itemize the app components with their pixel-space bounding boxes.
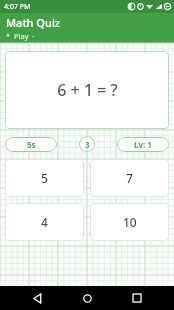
button[interactable]: 6 + 1 = ? (5, 51, 169, 129)
staticText: 5s (27, 139, 36, 150)
button[interactable]: 5s (5, 137, 57, 152)
staticText: 7 (126, 170, 133, 186)
button[interactable]: 5 (5, 159, 84, 197)
button[interactable]: 10 (90, 203, 169, 241)
staticText: Lv: 1 (134, 139, 152, 150)
staticText: - (32, 31, 35, 41)
button[interactable]: 7 (90, 159, 169, 197)
button[interactable]: 4 (5, 203, 84, 241)
staticText: 4:07 PM (4, 2, 31, 12)
staticText: 5 (41, 170, 48, 186)
staticText: 6 + 1 = ? (57, 79, 118, 101)
staticText: 10 (123, 214, 137, 230)
staticText: Play (14, 31, 29, 41)
staticText: 4 (41, 214, 48, 230)
button[interactable]: Back (26, 286, 50, 310)
staticText: Math Quiz (6, 15, 61, 30)
button[interactable]: 3 (79, 136, 95, 152)
button[interactable]: Recent apps (125, 286, 149, 310)
button[interactable]: Home (75, 286, 99, 310)
button[interactable]: Lv: 1 (117, 137, 169, 152)
staticText: 3 (85, 139, 90, 150)
staticText: + (6, 31, 11, 41)
